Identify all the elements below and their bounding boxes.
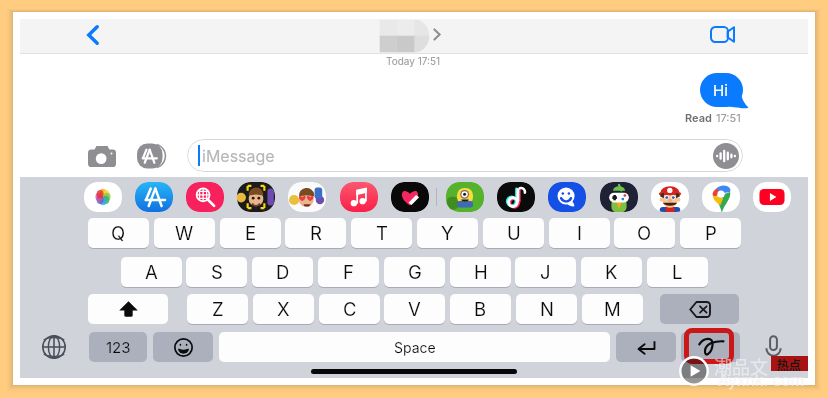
button[interactable]: Music (340, 182, 378, 212)
button[interactable]: Emoji (548, 182, 586, 212)
staticText: C (343, 298, 357, 320)
button[interactable]: Return (616, 332, 676, 362)
button[interactable]: U (483, 218, 544, 248)
button[interactable]: Y (417, 218, 478, 248)
staticText: iMessage (202, 146, 275, 165)
staticText: I (577, 222, 582, 244)
button[interactable]: Q (88, 218, 149, 248)
staticText: 热点 (777, 356, 802, 371)
button[interactable]: O (614, 218, 675, 248)
button[interactable]: iMessage apps (133, 141, 169, 171)
staticText: S (211, 261, 223, 283)
button[interactable]: T (351, 218, 412, 248)
button[interactable]: F (318, 257, 379, 287)
button[interactable]: TikTok (497, 182, 535, 212)
staticText: J (540, 261, 551, 283)
button[interactable]: J (515, 257, 576, 287)
staticText: H (474, 261, 488, 283)
button[interactable]: I (549, 218, 610, 248)
staticText: N (540, 298, 554, 320)
button[interactable]: Z (187, 294, 248, 324)
staticText: Space (394, 339, 436, 356)
button[interactable]: S (186, 257, 247, 287)
staticText: B (474, 298, 487, 320)
button[interactable]: K (581, 257, 642, 287)
button[interactable]: M (582, 294, 643, 324)
staticText: 17:51 (716, 111, 741, 124)
button[interactable]: Memoji (288, 182, 326, 212)
staticText: K (605, 261, 618, 283)
button[interactable]: Camera (84, 141, 120, 171)
button[interactable]: Handwriting (681, 332, 740, 362)
button[interactable]: P (680, 218, 741, 248)
button[interactable]: FaceTime video call (700, 18, 745, 52)
staticText: W (175, 222, 194, 244)
button[interactable]: Memoji stickers (237, 182, 275, 212)
button[interactable]: Next keyboard (39, 332, 69, 361)
staticText: Q (111, 222, 126, 244)
button[interactable]: H (450, 257, 511, 287)
button[interactable]: Audio message (713, 143, 739, 169)
button[interactable]: C (319, 294, 380, 324)
staticText: P (705, 222, 717, 244)
button[interactable]: Minion stickers (446, 182, 484, 212)
staticText: R (310, 222, 322, 244)
staticText: V (408, 298, 421, 320)
staticText: U (507, 222, 521, 244)
button[interactable]: G (384, 257, 445, 287)
staticText: 123 (106, 338, 131, 356)
button[interactable]: Photos (84, 182, 122, 212)
button[interactable]: Space (219, 332, 610, 362)
staticText: D (276, 261, 290, 283)
staticText: A (145, 261, 158, 283)
button[interactable]: 123 (89, 332, 147, 362)
button[interactable]: V (384, 294, 445, 324)
staticText: Today 17:51 (386, 55, 441, 67)
button[interactable]: Contact details (380, 20, 432, 52)
button[interactable]: Super Mario stickers (651, 182, 689, 212)
staticText: E (245, 222, 257, 244)
staticText: T (376, 222, 388, 244)
button[interactable]: D (252, 257, 313, 287)
button[interactable]: B (450, 294, 511, 324)
button[interactable]: W (154, 218, 215, 248)
button[interactable]: Digital Touch (391, 182, 429, 212)
staticText: O (637, 222, 652, 244)
button[interactable]: L (647, 257, 708, 287)
button[interactable]: YouTube (753, 182, 791, 212)
button[interactable]: Game Pigeon (600, 182, 638, 212)
button[interactable]: iMessage (187, 139, 743, 172)
button[interactable]: App Store (135, 182, 173, 212)
button[interactable]: Back (77, 19, 109, 51)
button[interactable]: Google Maps (702, 182, 740, 212)
staticText: Y (441, 222, 454, 244)
staticText: Z (212, 298, 224, 320)
button[interactable]: A (121, 257, 182, 287)
staticText: Read (685, 111, 712, 124)
staticText: X (277, 298, 290, 320)
button[interactable]: Image search (186, 182, 224, 212)
staticText: G (408, 261, 422, 283)
staticText: Hi (713, 81, 728, 99)
button[interactable]: Shift (88, 294, 168, 324)
staticText: Ayxnk. com (718, 371, 805, 390)
button[interactable]: R (285, 218, 346, 248)
button[interactable]: X (253, 294, 314, 324)
button[interactable]: Delete (660, 294, 739, 324)
staticText: M (604, 298, 621, 320)
staticText: F (343, 261, 354, 283)
button[interactable]: Emoji (153, 332, 213, 362)
button[interactable]: N (516, 294, 577, 324)
staticText: 潮品文 (714, 353, 768, 379)
staticText: L (672, 261, 683, 283)
button[interactable]: E (220, 218, 281, 248)
button[interactable]: Dictation (758, 332, 789, 361)
